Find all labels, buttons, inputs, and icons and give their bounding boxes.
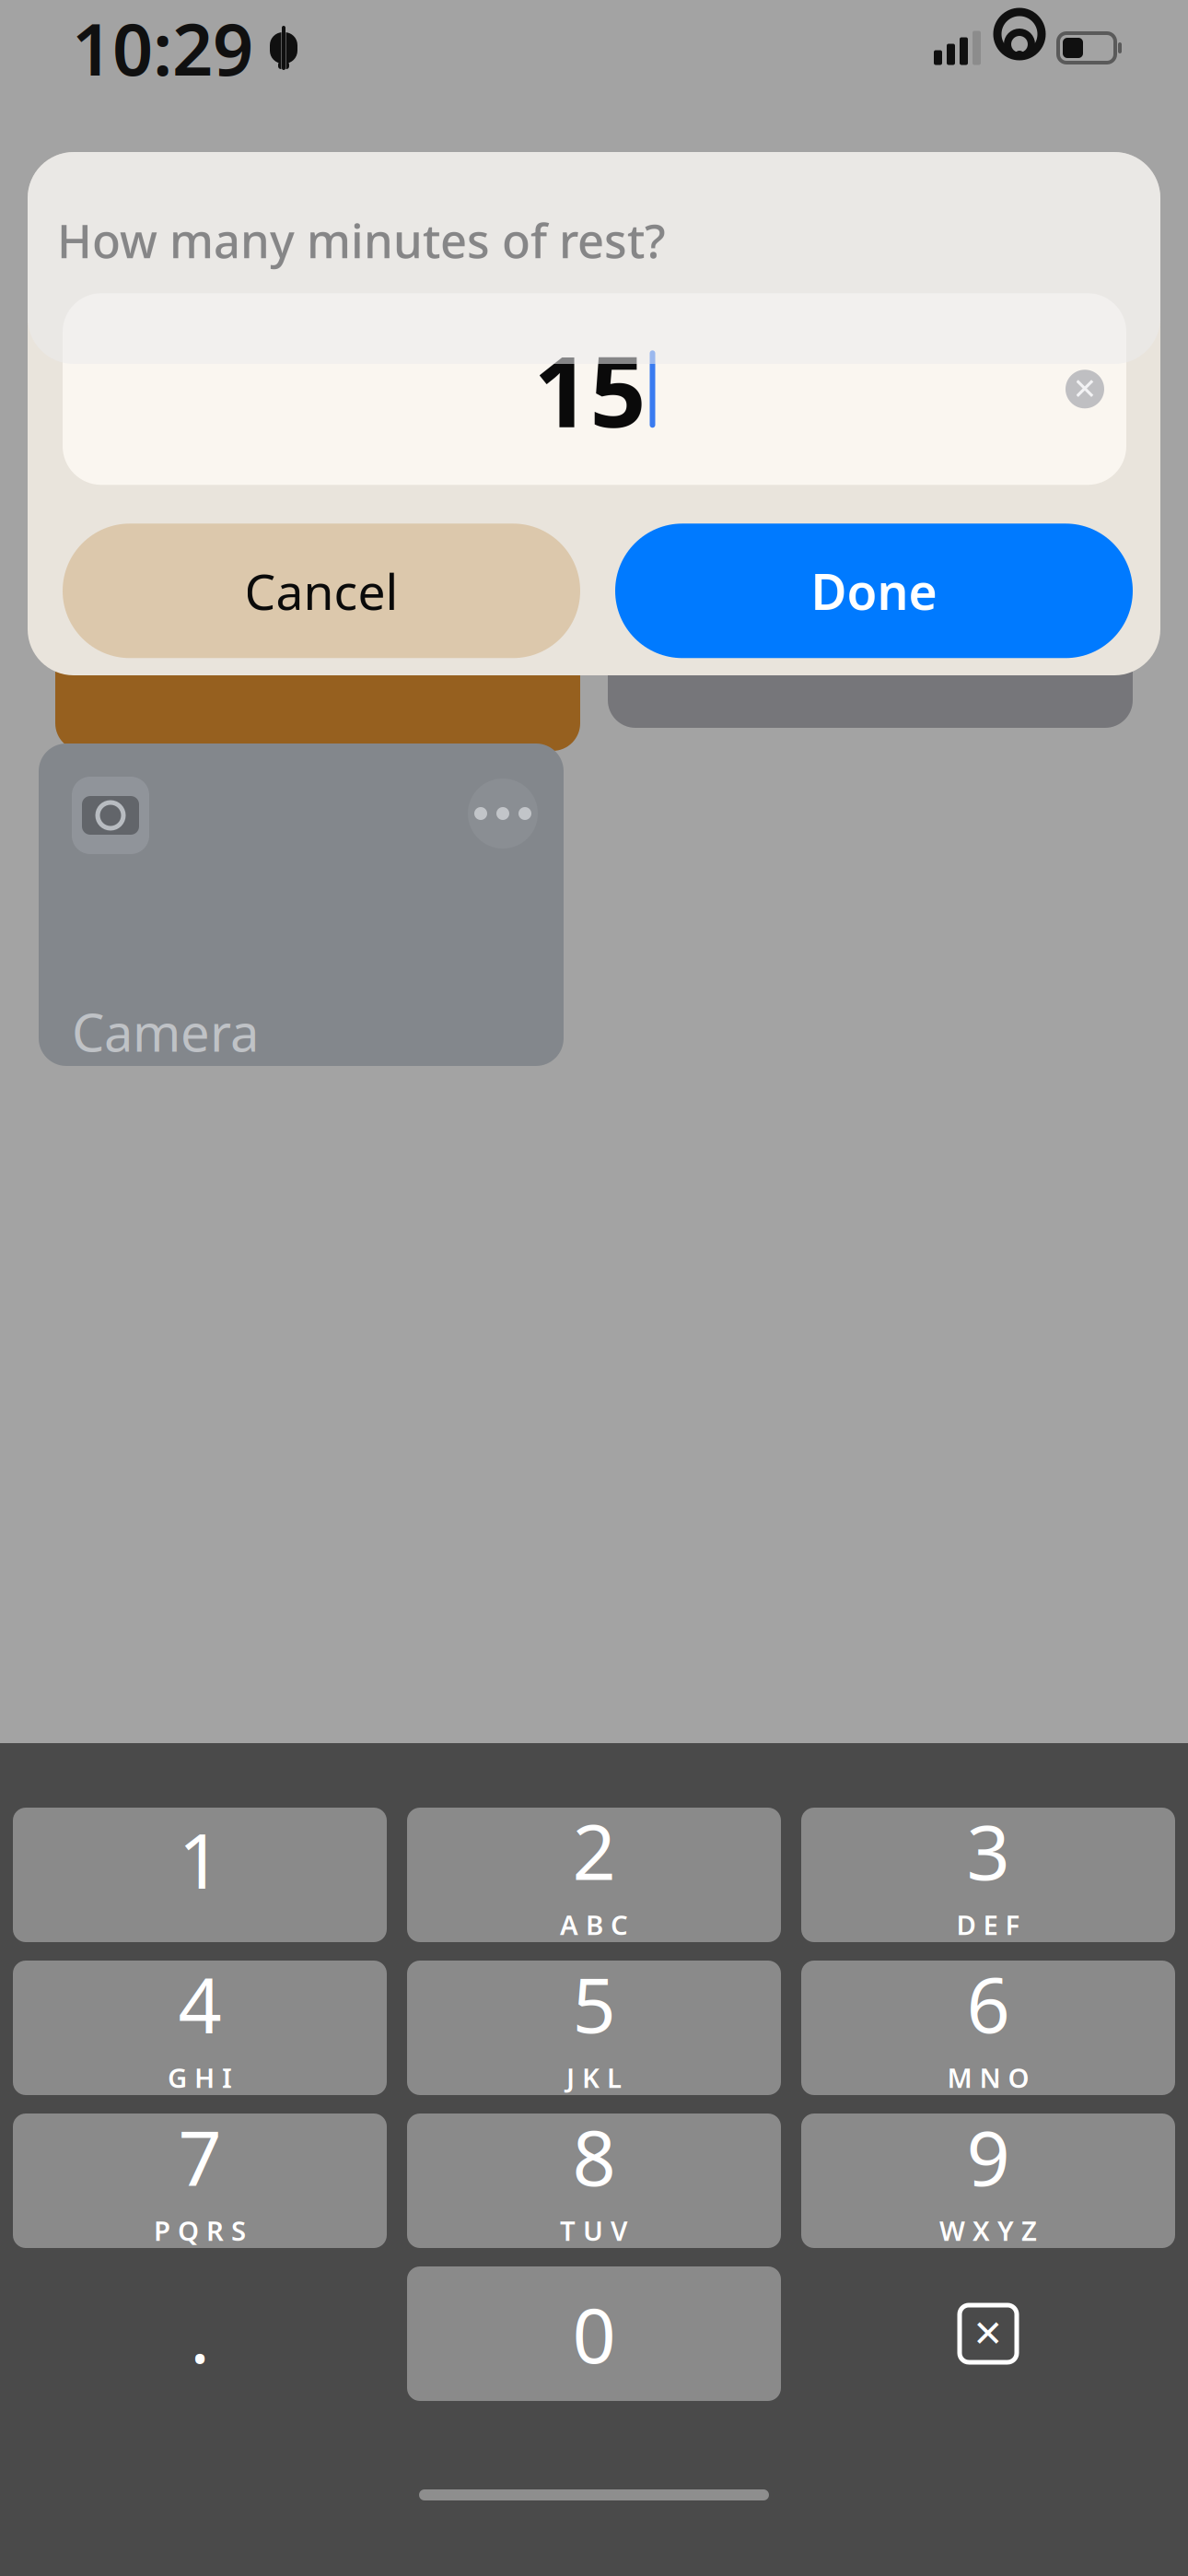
staticText: 10:29	[72, 1, 253, 95]
staticText: P Q R S	[154, 2212, 246, 2248]
staticText: 2	[572, 1800, 616, 1901]
staticText: G H I	[168, 2060, 232, 2095]
staticText: ✕	[1072, 372, 1097, 406]
button[interactable]: 8	[407, 2113, 781, 2248]
staticText: 4	[178, 1953, 221, 2054]
button[interactable]: Camera	[55, 757, 580, 1080]
staticText: Done	[811, 558, 937, 623]
staticText: D E F	[956, 1907, 1020, 1943]
staticText: 15	[534, 324, 646, 454]
button[interactable]: Cancel	[63, 524, 580, 658]
button[interactable]: More options	[468, 779, 538, 849]
staticText: .	[190, 2283, 210, 2384]
staticText: ✕	[973, 2313, 1004, 2355]
staticText: 6	[967, 1953, 1010, 2054]
staticText: 1	[178, 1809, 221, 1910]
staticText: T U V	[560, 2212, 628, 2248]
button[interactable]: 9	[801, 2113, 1175, 2248]
staticText: 9	[967, 2106, 1010, 2207]
staticText: 3	[967, 1800, 1010, 1901]
staticText: W X Y Z	[939, 2212, 1037, 2248]
button[interactable]: 5	[407, 1961, 781, 2095]
button[interactable]: 4	[13, 1961, 387, 2095]
staticText: 5	[572, 1953, 616, 2054]
button[interactable]: Delete	[801, 2266, 1175, 2401]
button[interactable]: Clear text	[1066, 370, 1104, 408]
staticText: J K L	[566, 2060, 622, 2095]
button[interactable]: 6	[801, 1961, 1175, 2095]
staticText: A B C	[560, 1907, 628, 1943]
button[interactable]: .	[13, 2266, 387, 2401]
staticText: M N O	[947, 2060, 1029, 2095]
staticText: Camera	[72, 997, 259, 1066]
staticText: 0	[572, 2283, 616, 2384]
button[interactable]: 1	[13, 1808, 387, 1942]
staticText: Cancel	[245, 558, 398, 623]
staticText: 8	[572, 2106, 616, 2207]
button[interactable]: 0	[407, 2266, 781, 2401]
staticText: How many minutes of rest?	[57, 209, 666, 271]
button[interactable]: Done	[615, 524, 1133, 658]
button[interactable]: 3	[801, 1808, 1175, 1942]
button[interactable]: 7	[13, 2113, 387, 2248]
button[interactable]: 2	[407, 1808, 781, 1942]
staticText: 7	[178, 2106, 221, 2207]
